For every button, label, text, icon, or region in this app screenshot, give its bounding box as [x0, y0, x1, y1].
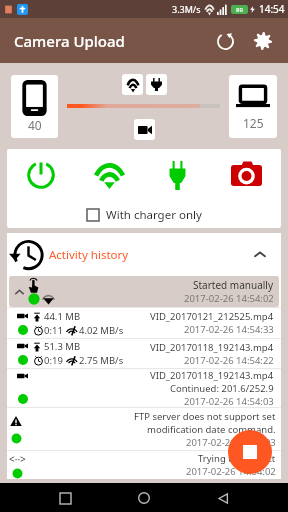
- staticText: 125: [243, 115, 264, 131]
- staticText: Activity history: [49, 247, 129, 263]
- button[interactable]: 44.1 MB: [7, 308, 281, 338]
- staticText: modification date command.: [147, 423, 276, 436]
- staticText: 2017-02-26 14:54:33: [184, 323, 274, 336]
- button[interactable]: With charger only: [7, 201, 281, 228]
- staticText: 2017-02-26 14:54:02: [186, 465, 276, 478]
- button[interactable]: Server: [229, 75, 277, 138]
- button[interactable]: Stop: [228, 430, 272, 474]
- staticText: 40: [28, 117, 42, 133]
- button[interactable]: Wi-Fi: [75, 150, 143, 200]
- staticText: Started manually: [193, 278, 274, 292]
- button[interactable]: Refresh: [206, 22, 244, 60]
- staticText: 2017-02-26 14:54:03: [184, 395, 274, 407]
- button[interactable]: Charging: [146, 74, 167, 95]
- staticText: With charger only: [106, 207, 202, 223]
- button[interactable]: FTP server does not support set: [7, 408, 281, 450]
- button[interactable]: Power: [7, 150, 75, 200]
- button[interactable]: Back: [51, 484, 79, 512]
- staticText: 2.75 MB/s: [79, 354, 124, 367]
- button[interactable]: VID_20170118_192143.mp4: [7, 369, 281, 407]
- staticText: 3.3M/s: [172, 3, 201, 15]
- button[interactable]: Started manually: [9, 276, 279, 307]
- staticText: 4.02 MB/s: [79, 324, 124, 337]
- button[interactable]: Wi-Fi connection: [122, 74, 143, 95]
- button[interactable]: Recents: [209, 484, 237, 512]
- staticText: 2017-02-26 14:54:22: [184, 354, 274, 367]
- staticText: VID_20170118_192143.mp4: [150, 369, 274, 382]
- button[interactable]: Activity history: [7, 233, 281, 276]
- button[interactable]: Phone: [11, 75, 58, 138]
- staticText: 44.1 MB: [44, 310, 81, 323]
- button[interactable]: <··>: [7, 451, 281, 479]
- staticText: 0:19: [44, 354, 63, 367]
- staticText: FTP server does not support set: [134, 410, 276, 423]
- button[interactable]: Settings: [244, 22, 282, 60]
- button[interactable]: Home: [130, 484, 158, 512]
- button[interactable]: 51.3 MB: [7, 339, 281, 368]
- button[interactable]: Video: [134, 119, 155, 140]
- staticText: VID_20170121_212525.mp4: [150, 310, 274, 323]
- staticText: 0:11: [44, 324, 63, 337]
- staticText: 14:54: [259, 2, 285, 16]
- staticText: Continued: 201.6/252.9: [170, 382, 274, 395]
- staticText: VID_20170118_192143.mp4: [150, 341, 274, 354]
- staticText: Camera Upload: [14, 31, 125, 51]
- staticText: Trying to connect: [198, 452, 276, 465]
- button[interactable]: Camera: [212, 150, 281, 200]
- staticText: <··>: [9, 452, 26, 466]
- staticText: 2017-02-26 14:54:02: [184, 292, 274, 305]
- staticText: 89: [236, 6, 243, 14]
- button[interactable]: Charger: [143, 150, 212, 200]
- staticText: 2017-02-26 14:54:03: [186, 436, 276, 449]
- staticText: 51.3 MB: [44, 340, 81, 353]
